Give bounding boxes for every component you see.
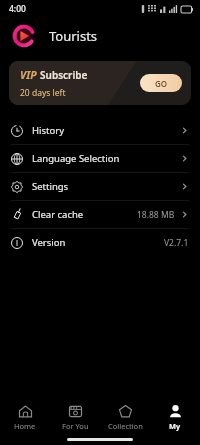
button[interactable]: Collection: [100, 400, 150, 434]
staticText: GO: [155, 78, 168, 89]
staticText: Tourists: [49, 27, 98, 45]
button[interactable]: My: [150, 400, 200, 434]
button[interactable]: Language Selection: [0, 145, 200, 172]
button[interactable]: Settings: [0, 173, 200, 200]
staticText: Language Selection: [32, 152, 120, 165]
staticText: For You: [62, 421, 89, 431]
staticText: 20 days left: [20, 87, 66, 99]
staticText: History: [32, 124, 64, 137]
staticText: Collection: [108, 421, 143, 431]
staticText: Version: [32, 236, 66, 249]
button[interactable]: GO: [140, 74, 182, 92]
button[interactable]: History: [0, 117, 200, 144]
button[interactable]: Home: [0, 400, 50, 434]
staticText: My: [169, 421, 181, 431]
button[interactable]: For You: [50, 400, 100, 434]
staticText: 4:00: [9, 3, 26, 15]
staticText: 18.88 MB: [137, 209, 175, 221]
staticText: VIP: [20, 68, 37, 82]
staticText: Clear cache: [32, 208, 84, 221]
button[interactable]: Version: [0, 229, 200, 256]
button[interactable]: Clear cache: [0, 201, 200, 228]
button[interactable]: VIP: [9, 61, 191, 105]
staticText: Home: [14, 421, 36, 431]
staticText: V2.7.1: [164, 237, 189, 249]
staticText: Subscribe: [40, 68, 88, 82]
staticText: Settings: [32, 180, 69, 193]
